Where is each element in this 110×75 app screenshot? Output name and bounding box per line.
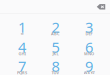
staticText: GHI xyxy=(18,51,25,56)
staticText: MNO xyxy=(84,51,94,56)
staticText: JKL xyxy=(52,51,58,56)
staticText: 7 xyxy=(18,56,26,75)
staticText: 5 xyxy=(51,37,59,57)
staticText: ∞ xyxy=(20,31,23,36)
button[interactable]: 3 xyxy=(72,19,105,39)
button[interactable]: 8 xyxy=(39,58,72,75)
staticText: 8 xyxy=(51,56,59,75)
button[interactable]: 2 xyxy=(39,19,72,39)
staticText: 1 xyxy=(18,17,26,37)
button[interactable]: 5 xyxy=(39,39,72,59)
button[interactable]: 1 xyxy=(5,19,38,39)
staticText: 2 xyxy=(51,17,59,37)
staticText: PQRS xyxy=(17,70,27,75)
staticText: TUV xyxy=(51,70,59,75)
staticText: 6 xyxy=(85,37,93,57)
button[interactable]: 7 xyxy=(5,58,38,75)
staticText: WXYZ xyxy=(83,70,94,75)
button[interactable]: 9 xyxy=(72,58,105,75)
staticText: DEF xyxy=(85,31,92,36)
staticText: 9 xyxy=(85,56,93,75)
staticText: 3 xyxy=(85,17,93,37)
staticText: 4 xyxy=(18,37,26,57)
button[interactable]: 6 xyxy=(72,39,105,59)
button[interactable]: Delete xyxy=(92,0,110,13)
staticText: ABC xyxy=(51,31,60,36)
button[interactable]: 4 xyxy=(5,39,38,59)
